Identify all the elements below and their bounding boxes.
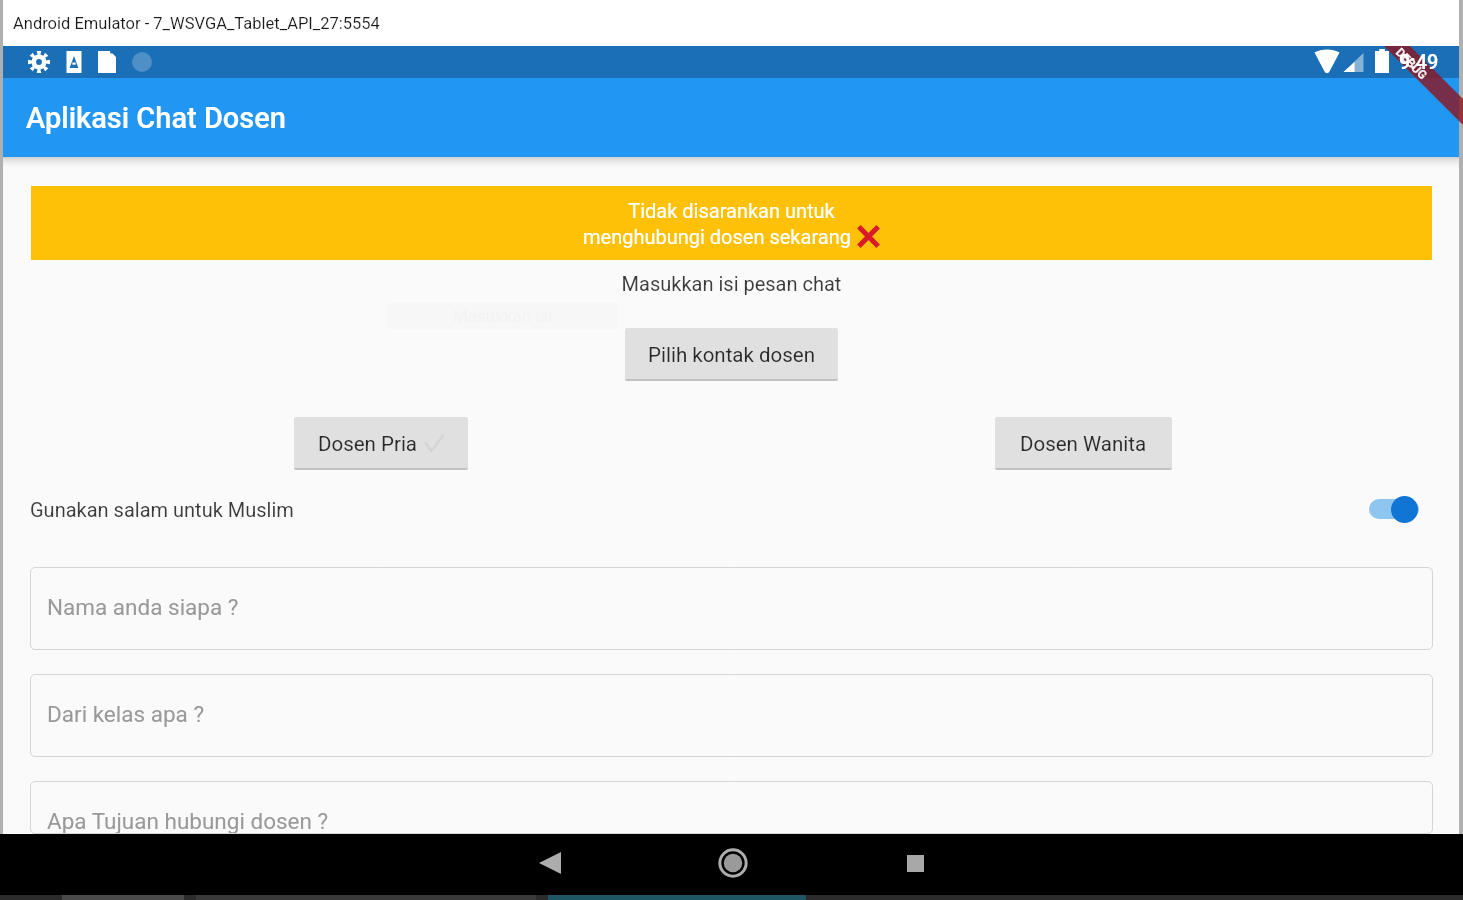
- button[interactable]: Back: [522, 835, 578, 891]
- button[interactable]: Apa Tujuan hubungi dosen ?: [30, 781, 1433, 834]
- staticText: Dari kelas apa ?: [47, 701, 205, 727]
- staticText: Dosen Wanita: [1020, 432, 1147, 456]
- staticText: Aplikasi Chat Dosen: [26, 101, 286, 135]
- staticText: Android Emulator - 7_WSVGA_Tablet_API_27…: [13, 14, 380, 33]
- staticText: Tidak disarankan untuk: [628, 199, 835, 222]
- button[interactable]: Home: [705, 835, 761, 891]
- staticText: Gunakan salam untuk Muslim: [30, 498, 294, 521]
- staticText: Masukkan isi pesan chat: [0, 272, 1463, 295]
- button[interactable]: Dari kelas apa ?: [30, 674, 1433, 757]
- button[interactable]: Tidak disarankan untuk: [31, 186, 1432, 260]
- button[interactable]: Dosen Pria: [294, 417, 468, 470]
- button[interactable]: Pilih kontak dosen: [625, 328, 838, 381]
- staticText: Dosen Pria: [318, 432, 418, 456]
- staticText: menghubungi dosen sekarang: [583, 225, 851, 248]
- staticText: Pilih kontak dosen: [648, 343, 816, 367]
- button[interactable]: Recents: [887, 835, 943, 891]
- button[interactable]: Gunakan salam untuk Muslim: [1369, 489, 1433, 529]
- button[interactable]: Nama anda siapa ?: [30, 567, 1433, 650]
- staticText: Apa Tujuan hubungi dosen ?: [47, 808, 329, 834]
- staticText: Nama anda siapa ?: [47, 594, 239, 620]
- button[interactable]: Dosen Wanita: [995, 417, 1172, 470]
- staticText: DEBUG: [1393, 45, 1430, 83]
- staticText: 9:49: [1399, 50, 1439, 73]
